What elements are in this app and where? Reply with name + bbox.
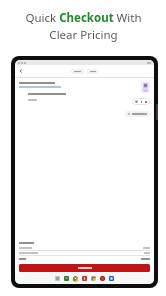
button[interactable]: Quantity controls	[132, 98, 150, 105]
staticText: Clear Pricing	[49, 27, 118, 43]
button[interactable]: Photos	[91, 276, 96, 281]
button[interactable]: Store	[109, 276, 114, 281]
button[interactable]	[19, 264, 150, 272]
button[interactable]: YouTube	[82, 276, 87, 281]
staticText: Quick Checkout With	[25, 10, 142, 26]
button[interactable]: Product image	[141, 82, 150, 93]
button[interactable]: Files	[55, 276, 60, 281]
button[interactable]: Back	[17, 67, 25, 75]
button[interactable]: Messages	[64, 276, 69, 281]
button[interactable]: Chrome	[73, 276, 78, 281]
button[interactable]	[71, 69, 84, 74]
button[interactable]	[87, 69, 98, 74]
button[interactable]	[125, 111, 150, 117]
button[interactable]: Shop	[100, 276, 105, 281]
